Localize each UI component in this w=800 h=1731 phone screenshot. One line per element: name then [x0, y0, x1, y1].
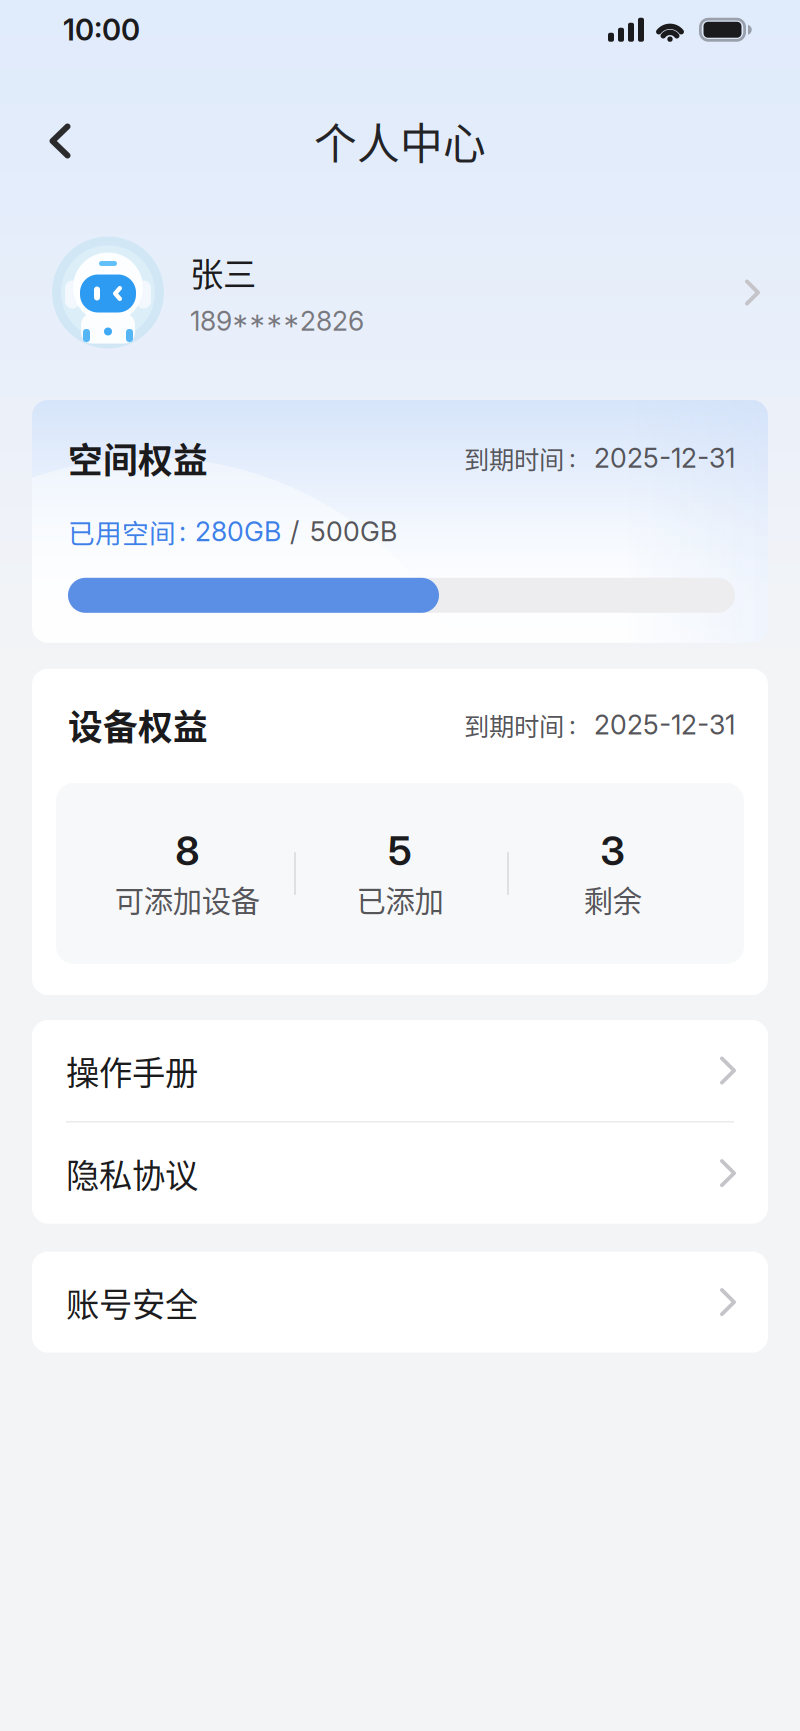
- button[interactable]: 账号安全: [32, 1252, 768, 1353]
- staticText: :: [569, 443, 576, 473]
- button[interactable]: Back: [20, 101, 100, 181]
- staticText: 2025-12-31: [594, 442, 735, 474]
- staticText: 500GB: [310, 515, 397, 548]
- staticText: 2025-12-31: [594, 709, 735, 741]
- staticText: 3: [600, 827, 625, 875]
- button[interactable]: 隐私协议: [32, 1123, 768, 1224]
- staticText: 5: [388, 827, 412, 875]
- staticText: 10:00: [63, 12, 140, 47]
- staticText: 可添加设备: [115, 878, 260, 920]
- button[interactable]: 操作手册: [32, 1020, 768, 1121]
- staticText: /: [290, 515, 299, 548]
- staticText: 账号安全: [66, 1278, 198, 1326]
- staticText: 空间权益: [68, 433, 208, 483]
- staticText: 189****2826: [190, 305, 364, 337]
- staticText: 隐私协议: [66, 1149, 198, 1197]
- staticText: 8: [175, 827, 199, 875]
- staticText: 操作手册: [66, 1046, 198, 1095]
- staticText: 个人中心: [314, 110, 486, 172]
- staticText: :: [569, 710, 576, 740]
- staticText: 设备权益: [68, 700, 208, 750]
- staticText: 剩余: [584, 878, 642, 920]
- staticText: 到期时间: [464, 440, 564, 476]
- staticText: 张三: [190, 248, 256, 296]
- staticText: 到期时间: [464, 707, 564, 743]
- button[interactable]: 张三: [0, 186, 800, 399]
- staticText: 280GB: [195, 515, 281, 548]
- staticText: 已用空间: [68, 512, 176, 551]
- staticText: 已添加: [356, 878, 443, 920]
- staticText: :: [179, 515, 186, 548]
